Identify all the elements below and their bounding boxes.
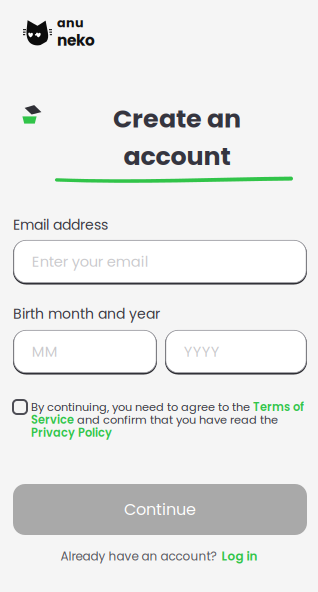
button[interactable]: Log in [221,548,257,565]
staticText: Service [31,412,74,428]
staticText: and confirm that you have read the [74,412,278,428]
staticText: Enter your email [32,251,149,272]
staticText: Birth month and year [13,304,160,324]
staticText: Email address [13,215,108,235]
staticText: Create an [113,101,241,136]
staticText: YYYY [184,341,220,362]
staticText: By continuing, you need to agree to the [31,399,253,415]
staticText: Terms of [253,399,304,415]
staticText: neko [57,30,95,51]
staticText: account [123,138,230,174]
staticText: Continue [124,498,196,521]
button[interactable]: anuneko home [23,14,95,51]
staticText: MM [32,341,58,362]
staticText: Privacy Policy [31,425,112,441]
staticText: Already have an account? [60,548,216,565]
button[interactable]: Agree to terms [13,400,27,414]
staticText: anu [57,14,84,32]
staticText: Log in [221,548,257,565]
button[interactable]: Continue [13,484,307,535]
